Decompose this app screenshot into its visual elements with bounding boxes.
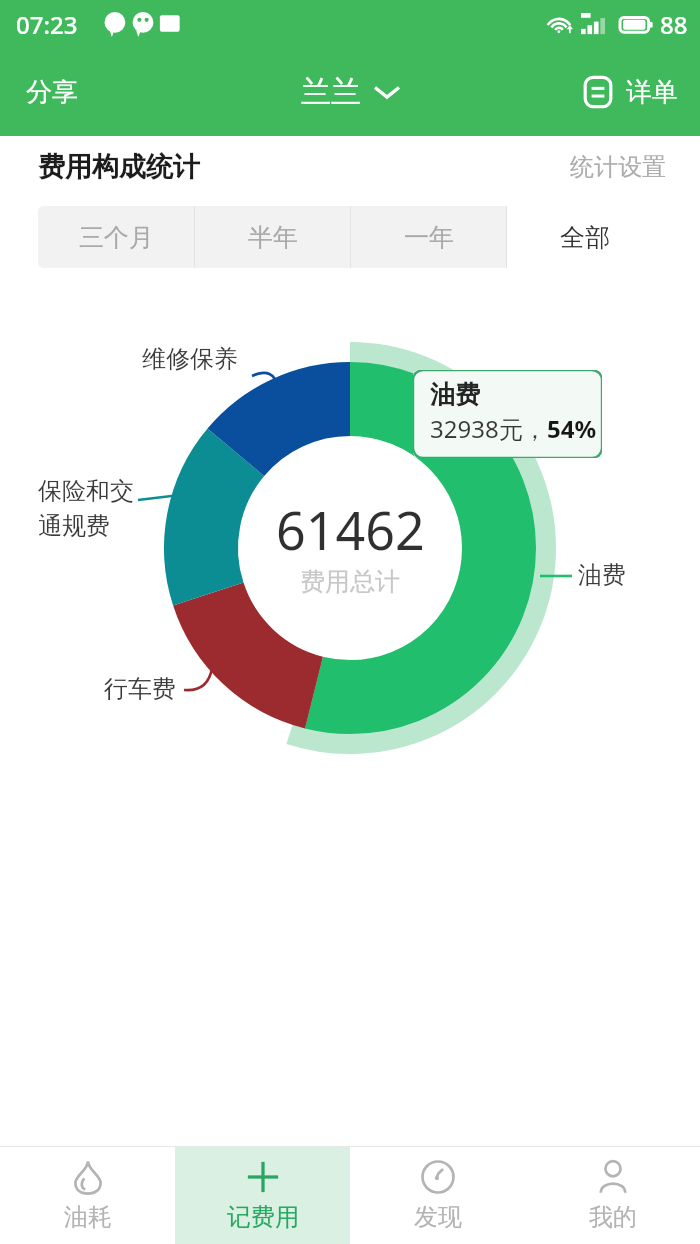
staticText: 61462 [276,494,425,565]
button[interactable]: 三个月 [38,206,194,268]
staticText: 费用总计 [300,566,400,597]
staticText: 费用构成统计 [38,150,200,184]
staticText: 油费 [430,379,480,410]
staticText: 分享 [26,76,78,109]
staticText: 油费 [578,560,626,590]
staticText: 我的 [589,1202,637,1232]
staticText: 88 [660,8,688,41]
button[interactable]: 分享 [0,48,104,136]
staticText: 记费用 [227,1202,299,1232]
staticText: 详单 [626,76,678,109]
staticText: 半年 [248,222,298,253]
staticText: 32938元， [430,412,547,445]
staticText: 兰兰 [301,73,361,111]
button[interactable]: 统计设置 [536,142,700,192]
staticText: 三个月 [79,222,154,253]
button[interactable]: 油耗 [0,1147,175,1244]
other: 我的 [595,1159,631,1195]
staticText: 维修保养 [142,344,238,374]
button[interactable]: 详单 [560,48,700,136]
staticText: 统计设置 [570,152,666,182]
staticText: 行车费 [104,674,176,704]
button[interactable]: 记费用 [175,1147,350,1244]
staticText: 54% [547,412,597,445]
staticText: 07:23 [16,8,78,41]
button[interactable]: 兰兰 [283,63,417,121]
button[interactable]: 半年 [195,206,350,268]
button[interactable]: 油费 [413,370,602,458]
button[interactable]: 全部 [507,206,662,268]
other: 记费用 [245,1159,281,1195]
other: 油耗 [70,1159,106,1195]
staticText: 一年 [404,222,454,253]
other: 发现 [420,1159,456,1195]
button[interactable]: 一年 [351,206,506,268]
staticText: 发现 [414,1202,462,1232]
staticText: 全部 [560,222,610,253]
button[interactable]: 我的 [525,1147,700,1244]
button[interactable]: 发现 [350,1147,525,1244]
staticText: 油耗 [64,1202,112,1232]
staticText: 保险和交 通规费 [38,476,134,541]
